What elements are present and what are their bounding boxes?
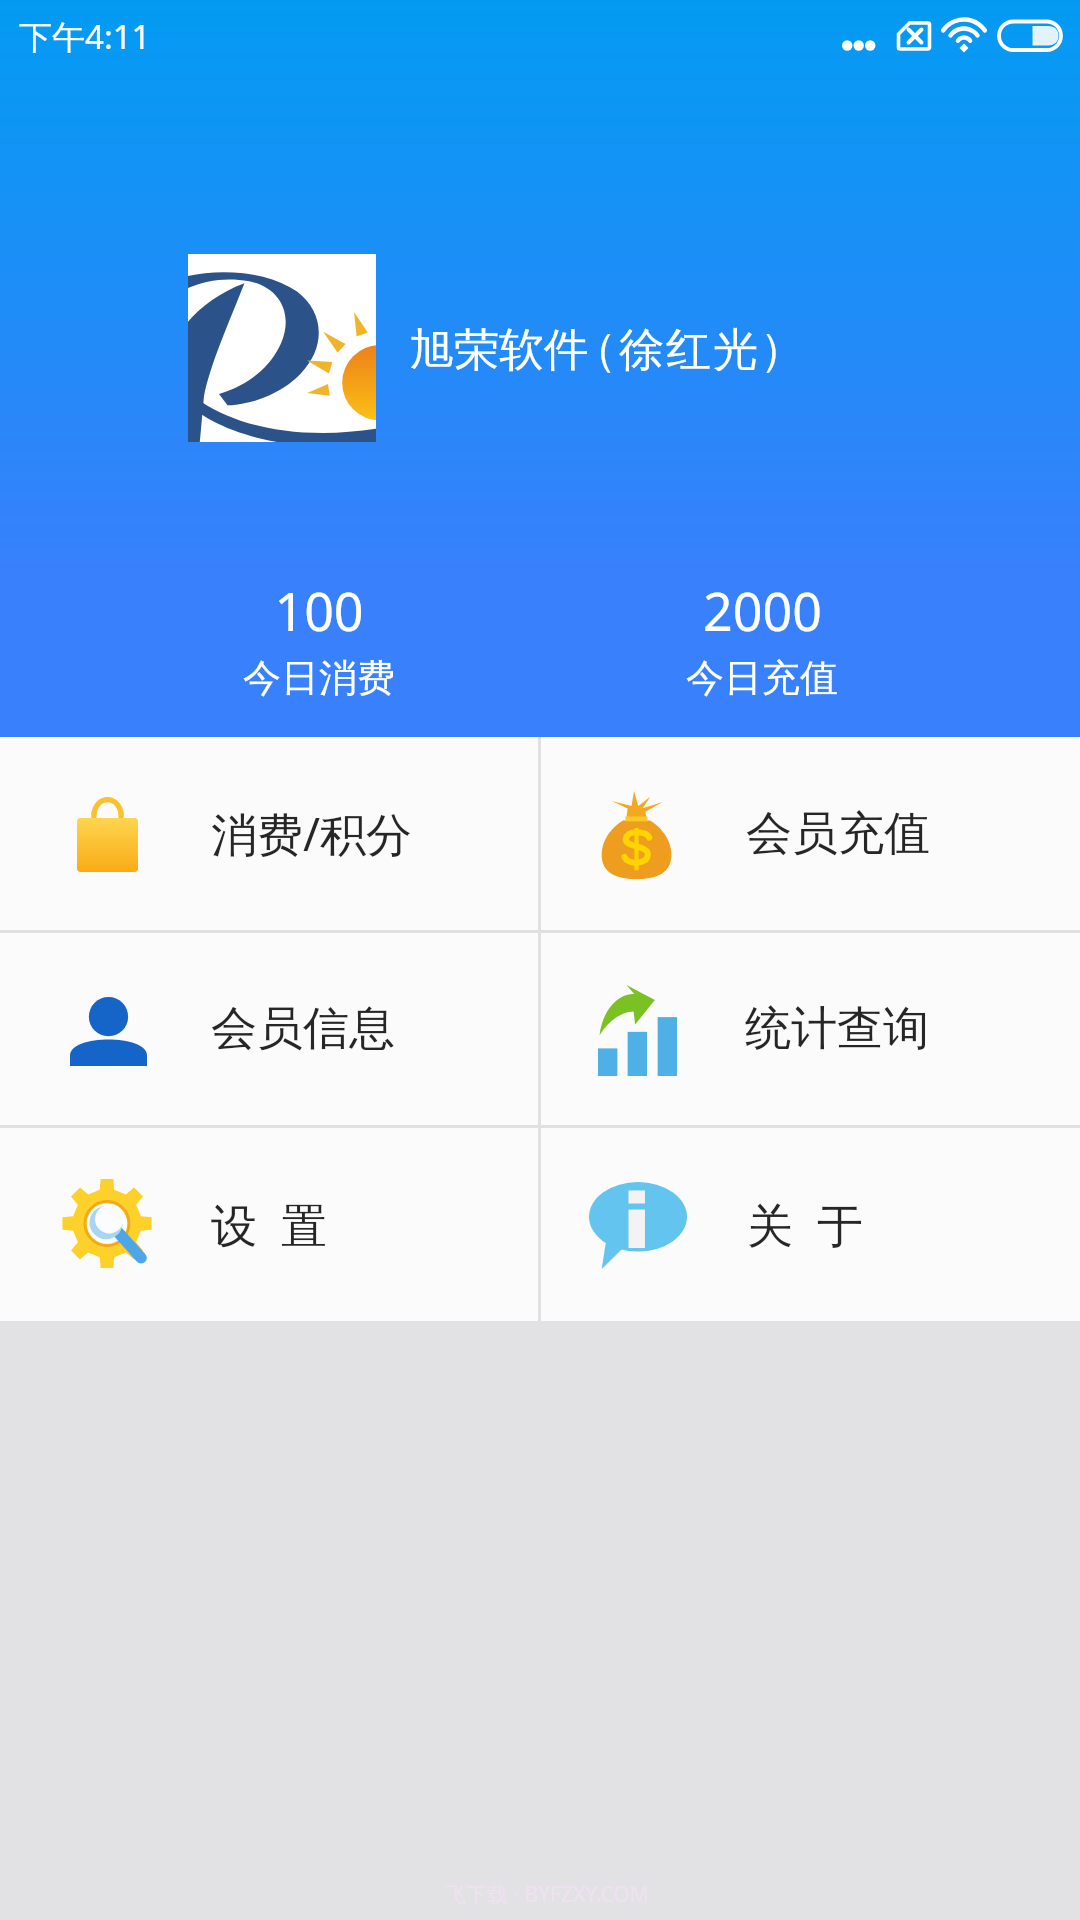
staticText: 100	[274, 575, 364, 646]
button[interactable]: 2000	[612, 575, 912, 702]
button[interactable]: 消费/积分	[0, 737, 538, 930]
button[interactable]: 统计查询	[541, 933, 1080, 1125]
button[interactable]: 旭荣软件 logo	[188, 254, 376, 442]
staticText: 设 置	[211, 1193, 327, 1256]
staticText: 下午4:11	[19, 14, 151, 59]
staticText: 今日充值	[686, 654, 838, 702]
staticText: 统计查询	[745, 1000, 929, 1058]
staticText: 今日消费	[243, 654, 395, 702]
button[interactable]: 100	[169, 575, 469, 702]
staticText: 消费/积分	[211, 802, 413, 865]
staticText: 2000	[703, 575, 822, 646]
staticText: （徐红光）	[571, 322, 806, 379]
button[interactable]: 设 置	[0, 1128, 538, 1321]
staticText: 会员信息	[211, 1000, 395, 1058]
button[interactable]: 会员信息	[0, 933, 538, 1125]
staticText: 关 于	[747, 1193, 863, 1256]
button[interactable]: 会员充值	[541, 737, 1080, 930]
button[interactable]: 关 于	[541, 1128, 1080, 1321]
staticText: 飞下载 · BYFZXY.COM	[445, 1880, 649, 1909]
staticText: 会员充值	[746, 805, 930, 863]
staticText: 旭荣软件	[409, 322, 589, 379]
